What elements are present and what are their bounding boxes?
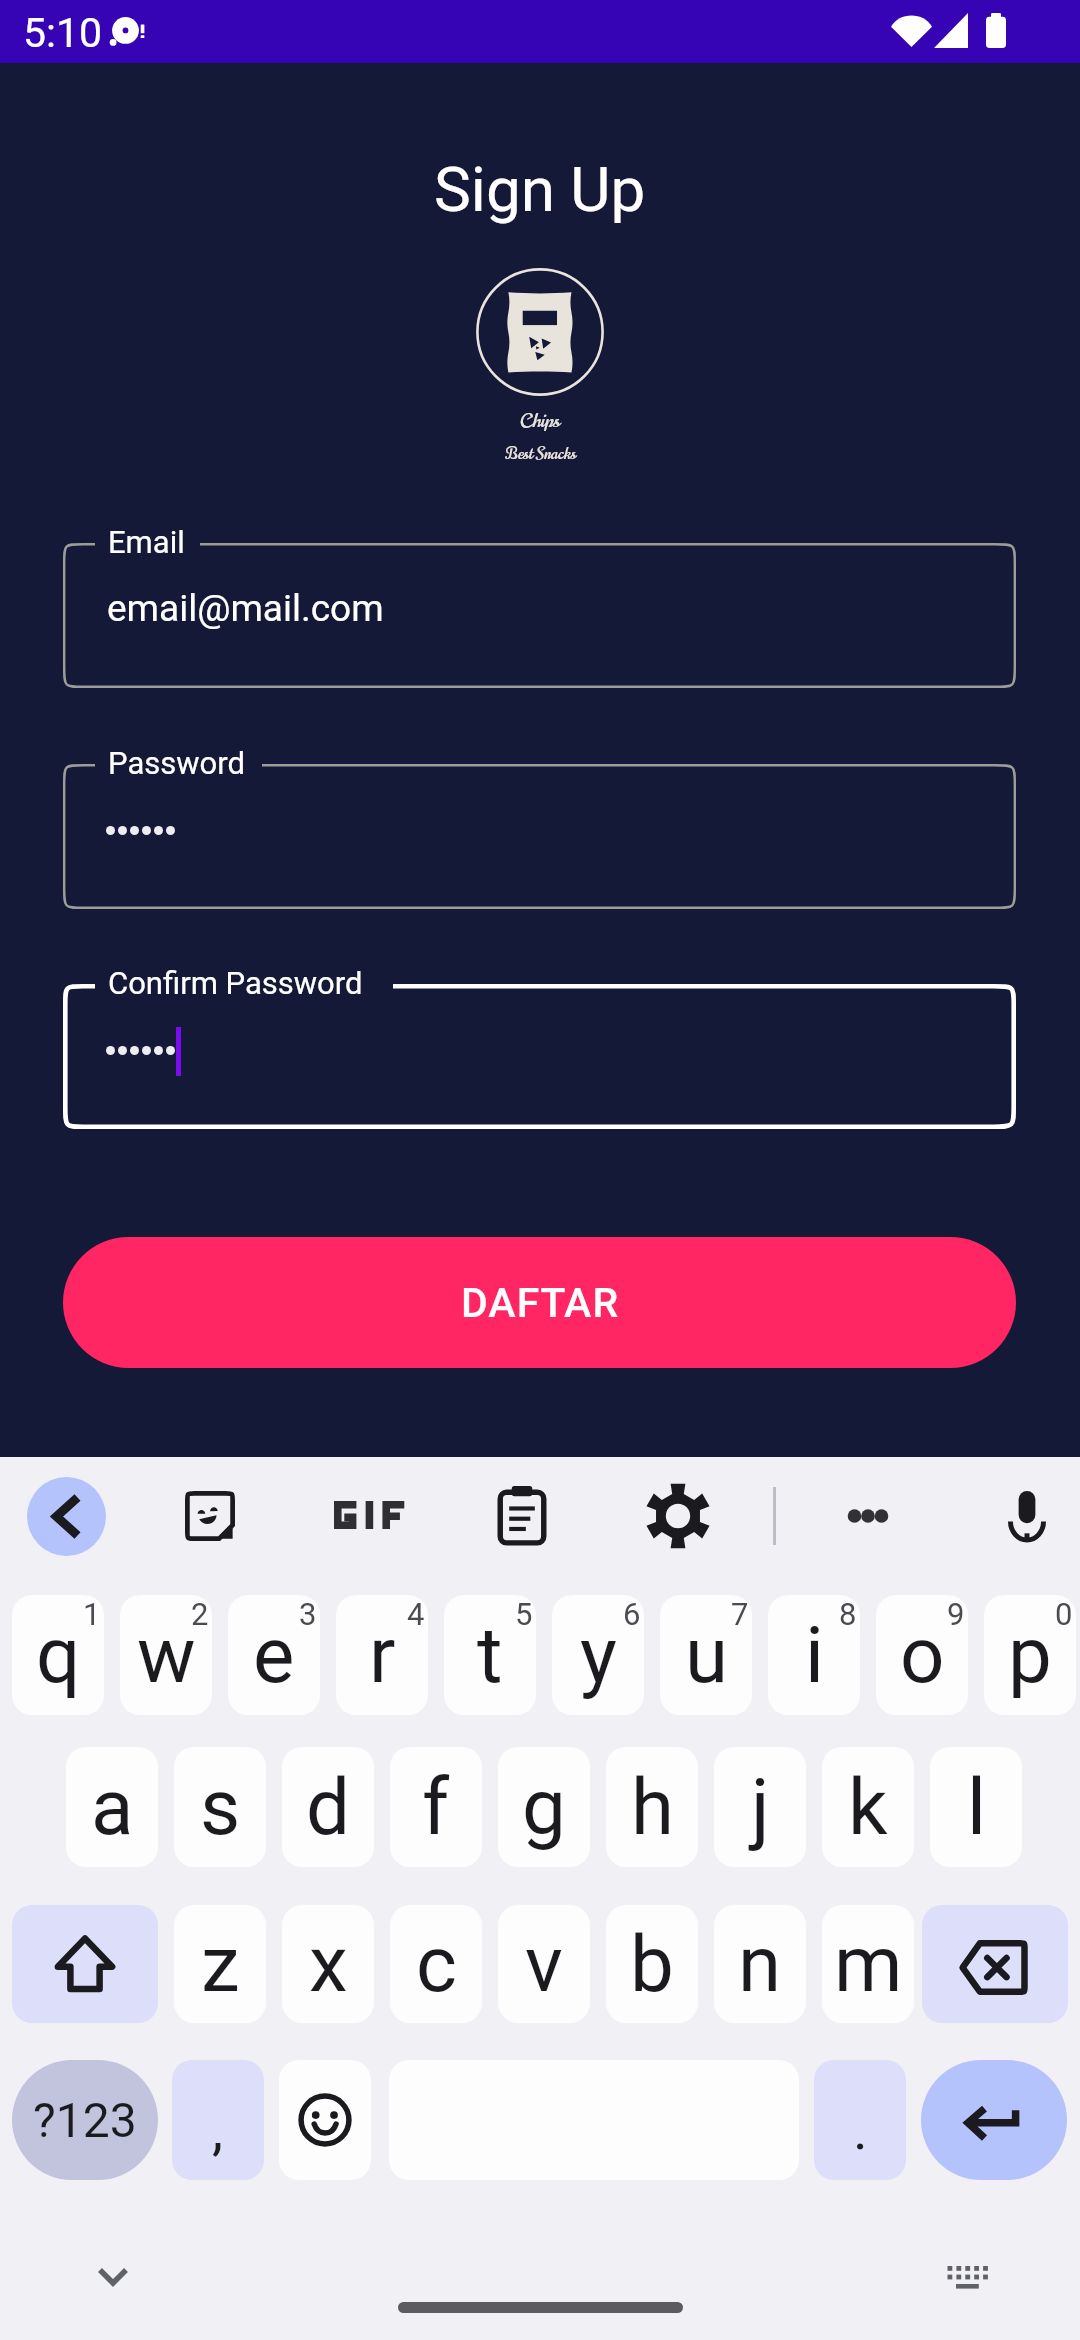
staticText: w bbox=[137, 1610, 196, 1701]
button[interactable]: . bbox=[814, 2060, 906, 2180]
button[interactable]: a bbox=[66, 1747, 158, 1867]
button[interactable]: Clipboard bbox=[490, 1484, 554, 1548]
button[interactable]: b bbox=[606, 1905, 698, 2023]
staticText: d bbox=[306, 1762, 350, 1853]
staticText: 9 bbox=[947, 1596, 965, 1632]
staticText: Email bbox=[108, 524, 185, 560]
staticText: s bbox=[200, 1762, 241, 1853]
button[interactable]: Password bbox=[63, 764, 1016, 909]
staticText: l bbox=[967, 1762, 986, 1853]
staticText: c bbox=[416, 1919, 457, 2010]
staticText: h bbox=[631, 1762, 674, 1853]
staticText: Confirm Password bbox=[108, 965, 363, 1001]
button[interactable]: v bbox=[498, 1905, 590, 2023]
staticText: g bbox=[522, 1762, 566, 1853]
staticText: b bbox=[630, 1919, 674, 2010]
staticText: 4 bbox=[407, 1596, 425, 1632]
staticText: ?123 bbox=[33, 2092, 137, 2148]
button[interactable]: Back bbox=[27, 1477, 106, 1556]
button[interactable]: GIF bbox=[334, 1501, 398, 1529]
button[interactable]: x bbox=[282, 1905, 374, 2023]
button[interactable]: Settings bbox=[645, 1483, 711, 1549]
button[interactable]: w bbox=[120, 1595, 212, 1715]
staticText: m bbox=[834, 1919, 903, 2010]
staticText: v bbox=[525, 1919, 563, 2010]
staticText: Sign Up bbox=[434, 153, 646, 226]
button[interactable]: c bbox=[390, 1905, 482, 2023]
button[interactable]: Stickers bbox=[185, 1491, 235, 1541]
button[interactable]: More options bbox=[835, 1483, 901, 1549]
staticText: u bbox=[685, 1610, 728, 1701]
button[interactable]: l bbox=[930, 1747, 1022, 1867]
button[interactable]: f bbox=[390, 1747, 482, 1867]
button[interactable]: m bbox=[822, 1905, 914, 2023]
button[interactable]: DAFTAR bbox=[63, 1237, 1016, 1368]
button[interactable]: r bbox=[336, 1595, 428, 1715]
staticText: 1 bbox=[83, 1596, 101, 1632]
staticText: f bbox=[422, 1762, 450, 1853]
button[interactable]: g bbox=[498, 1747, 590, 1867]
staticText: n bbox=[738, 1919, 782, 2010]
button[interactable]: d bbox=[282, 1747, 374, 1867]
button[interactable]: j bbox=[714, 1747, 806, 1867]
button[interactable]: Shift bbox=[12, 1905, 158, 2023]
button[interactable]: Emoji bbox=[279, 2060, 371, 2180]
staticText: email@mail.com bbox=[107, 587, 384, 630]
staticText: o bbox=[900, 1610, 945, 1701]
button[interactable]: ?123 bbox=[12, 2060, 158, 2180]
button[interactable]: q bbox=[12, 1595, 104, 1715]
staticText: 3 bbox=[299, 1596, 317, 1632]
button[interactable]: s bbox=[174, 1747, 266, 1867]
staticText: i bbox=[805, 1610, 824, 1701]
staticText: k bbox=[848, 1762, 888, 1853]
staticText: 0 bbox=[1055, 1596, 1073, 1632]
button[interactable]: Switch keyboard bbox=[944, 2257, 989, 2287]
staticText: j bbox=[751, 1762, 770, 1853]
button[interactable]: Enter bbox=[921, 2060, 1067, 2180]
button[interactable]: h bbox=[606, 1747, 698, 1867]
button[interactable]: i bbox=[768, 1595, 860, 1715]
staticText: , bbox=[212, 2097, 224, 2163]
staticText: p bbox=[1008, 1610, 1052, 1701]
staticText: Chips bbox=[520, 407, 561, 435]
staticText: 2 bbox=[191, 1596, 209, 1632]
staticText: DAFTAR bbox=[461, 1279, 619, 1327]
button[interactable]: z bbox=[174, 1905, 266, 2023]
staticText: t bbox=[477, 1610, 503, 1701]
staticText: 7 bbox=[731, 1596, 749, 1632]
staticText: z bbox=[201, 1919, 240, 2010]
button[interactable]: u bbox=[660, 1595, 752, 1715]
button[interactable]: , bbox=[172, 2060, 264, 2180]
button[interactable]: Backspace bbox=[922, 1905, 1068, 2023]
staticText: Password bbox=[108, 745, 245, 781]
button[interactable]: k bbox=[822, 1747, 914, 1867]
button[interactable]: n bbox=[714, 1905, 806, 2023]
button[interactable]: t bbox=[444, 1595, 536, 1715]
staticText: q bbox=[36, 1610, 81, 1701]
staticText: x bbox=[309, 1919, 348, 2010]
staticText: 8 bbox=[839, 1596, 857, 1632]
staticText: 6 bbox=[623, 1596, 641, 1632]
button[interactable]: Hide keyboard bbox=[83, 2247, 143, 2307]
button[interactable]: Email bbox=[63, 543, 1016, 688]
staticText: e bbox=[253, 1610, 295, 1701]
staticText: Best Snacks bbox=[505, 443, 576, 466]
button[interactable]: Voice input bbox=[1008, 1491, 1046, 1542]
button[interactable]: p bbox=[984, 1595, 1076, 1715]
staticText: y bbox=[580, 1610, 617, 1701]
staticText: 5:10 bbox=[23, 9, 103, 57]
staticText: a bbox=[91, 1762, 134, 1853]
button[interactable]: y bbox=[552, 1595, 644, 1715]
button[interactable]: e bbox=[228, 1595, 320, 1715]
button[interactable]: o bbox=[876, 1595, 968, 1715]
staticText: . bbox=[853, 2097, 868, 2163]
staticText: r bbox=[369, 1610, 396, 1701]
staticText: 5 bbox=[515, 1596, 533, 1632]
button[interactable]: Confirm Password bbox=[63, 984, 1016, 1129]
